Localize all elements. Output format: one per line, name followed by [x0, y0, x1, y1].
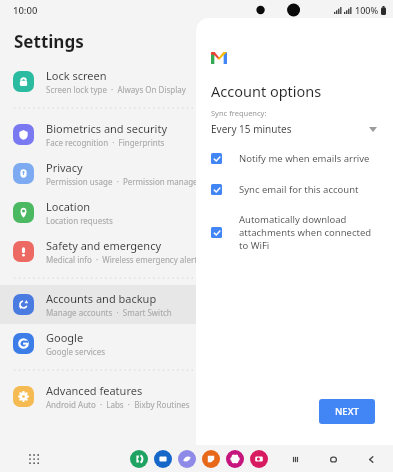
- button[interactable]: Advanced features: [0, 377, 393, 416]
- staticText: Permission usage · Permission manager: [46, 176, 201, 187]
- staticText: Location requests: [46, 215, 113, 226]
- staticText: 10:00: [13, 4, 38, 17]
- button[interactable]: Internet: [178, 450, 196, 468]
- button[interactable]: Camera: [250, 450, 268, 468]
- staticText: Lock screen: [46, 68, 107, 83]
- button[interactable]: Location: [0, 193, 393, 232]
- staticText: Biometrics and security: [46, 121, 167, 136]
- staticText: Account options: [211, 81, 322, 101]
- staticText: Sync frequency:: [211, 108, 267, 118]
- button[interactable]: Biometrics and security: [0, 115, 393, 154]
- staticText: Google: [46, 330, 84, 345]
- button[interactable]: Safety and emergency: [0, 232, 393, 271]
- staticText: Sync email for this account: [239, 183, 359, 196]
- button[interactable]: Privacy: [0, 154, 393, 193]
- staticText: Privacy: [46, 160, 83, 175]
- staticText: Location: [46, 199, 91, 214]
- staticText: Advanced features: [46, 383, 143, 398]
- button[interactable]: Google: [0, 324, 393, 363]
- button[interactable]: Accounts and backup: [0, 285, 393, 324]
- staticText: Automatically download attachments when …: [239, 213, 375, 252]
- staticText: Android Auto · Labs · Bixby Routines: [46, 399, 190, 410]
- button[interactable]: Home: [323, 449, 343, 469]
- button[interactable]: NEXT: [319, 399, 375, 424]
- button[interactable]: Lock screen: [0, 62, 393, 101]
- button[interactable]: Every 15 minutes: [211, 122, 377, 136]
- staticText: Google services: [46, 346, 106, 357]
- staticText: Safety and emergency: [46, 238, 162, 253]
- button[interactable]: Gallery: [226, 450, 244, 468]
- staticText: Notify me when emails arrive: [239, 152, 370, 165]
- staticText: Settings: [14, 30, 84, 53]
- button[interactable]: Sync email for this account: [211, 183, 375, 196]
- staticText: NEXT: [335, 405, 359, 418]
- button[interactable]: Back: [361, 449, 381, 469]
- button[interactable]: Galaxy Store: [202, 450, 220, 468]
- staticText: Accounts and backup: [46, 291, 157, 306]
- staticText: Manage accounts · Smart Switch: [46, 307, 172, 318]
- staticText: Every 15 minutes: [211, 122, 292, 136]
- button[interactable]: Automatically download attachments when …: [211, 213, 375, 252]
- staticText: Face recognition · Fingerprints: [46, 137, 165, 148]
- staticText: Screen lock type · Always On Display: [46, 84, 186, 95]
- button[interactable]: Messages: [154, 450, 172, 468]
- button[interactable]: Notify me when emails arrive: [211, 152, 375, 165]
- button[interactable]: Apps: [24, 449, 44, 469]
- staticText: Medical info · Wireless emergency alerts: [46, 254, 201, 265]
- staticText: 100%: [355, 4, 379, 16]
- button[interactable]: Recents: [285, 449, 305, 469]
- button[interactable]: Phone: [130, 450, 148, 468]
